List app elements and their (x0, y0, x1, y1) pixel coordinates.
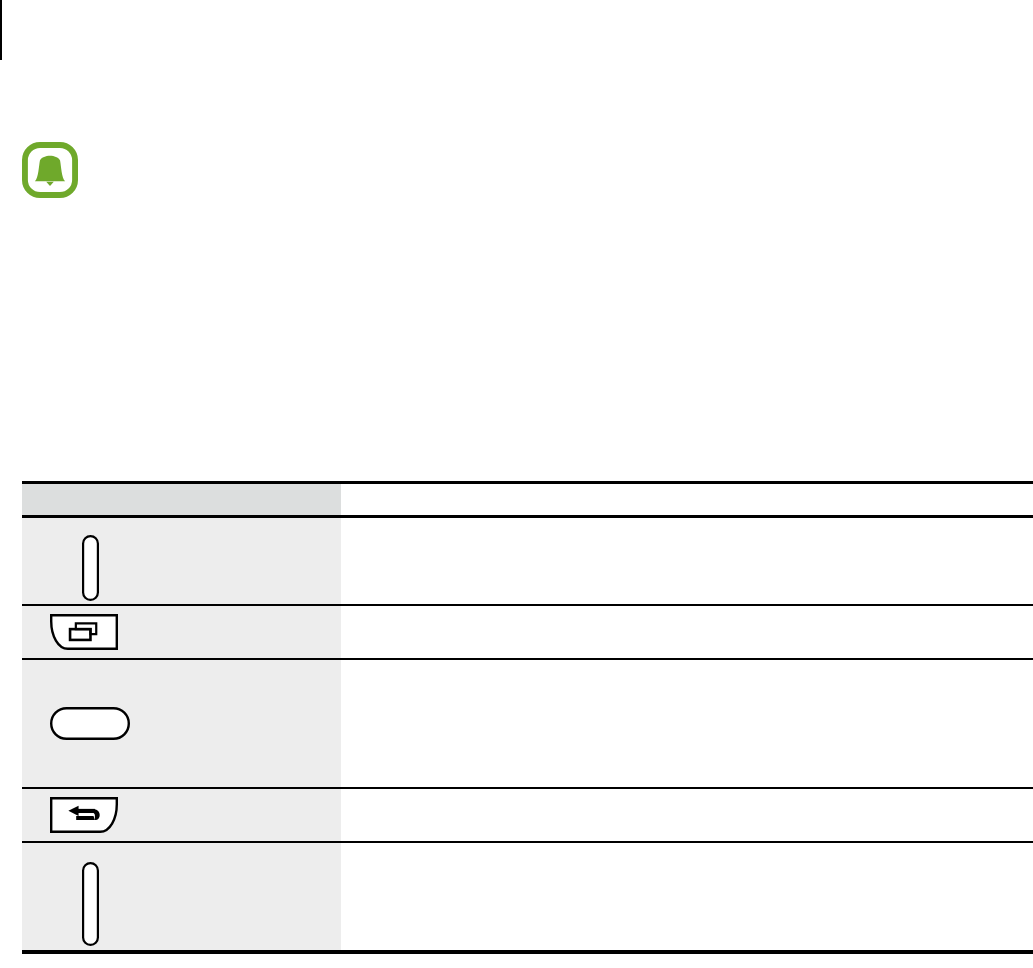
button[interactable]: Power key (22, 518, 1033, 604)
other: Home key (50, 707, 130, 740)
button[interactable]: Volume key (22, 843, 1033, 950)
button[interactable] (22, 484, 1033, 515)
other: Power key (82, 535, 99, 601)
other: Recents key (50, 614, 118, 650)
other: Volume key (82, 862, 99, 946)
button[interactable]: Home key (22, 660, 1033, 787)
other: Back key (50, 797, 118, 833)
button[interactable]: Back key (22, 789, 1033, 841)
other: Note (22, 142, 78, 198)
button[interactable]: Recents key (22, 606, 1033, 658)
